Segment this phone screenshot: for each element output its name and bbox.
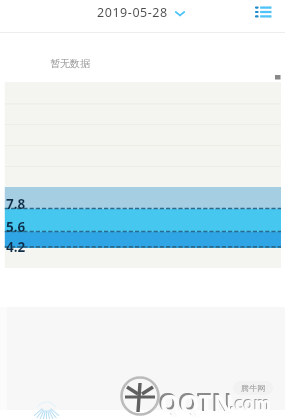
button[interactable]: 2019-05-28 — [97, 4, 186, 21]
staticText: QQTN — [158, 384, 232, 418]
staticText: QQTN — [160, 386, 234, 419]
staticText: 7.8 — [6, 195, 26, 213]
staticText: .com — [229, 391, 270, 414]
staticText: 暂无数据 — [50, 57, 90, 70]
staticText: .com — [230, 392, 271, 415]
staticText: 2019-05-28 — [97, 4, 168, 21]
staticText: 4.2 — [6, 238, 26, 256]
button[interactable]: List view — [255, 6, 272, 18]
staticText: 腾牛网 — [241, 383, 265, 393]
staticText: 5.6 — [6, 218, 26, 236]
